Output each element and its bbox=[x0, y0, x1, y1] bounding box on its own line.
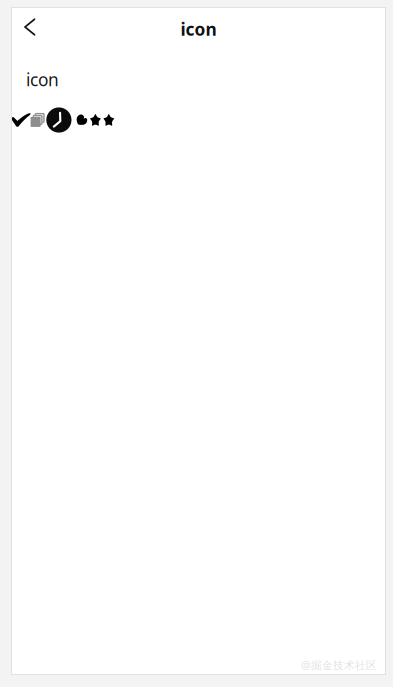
staticText: @掘金技术社区 bbox=[301, 658, 377, 672]
staticText: icon bbox=[26, 68, 59, 91]
button[interactable]: Back bbox=[11, 11, 48, 47]
staticText: icon bbox=[180, 17, 216, 40]
